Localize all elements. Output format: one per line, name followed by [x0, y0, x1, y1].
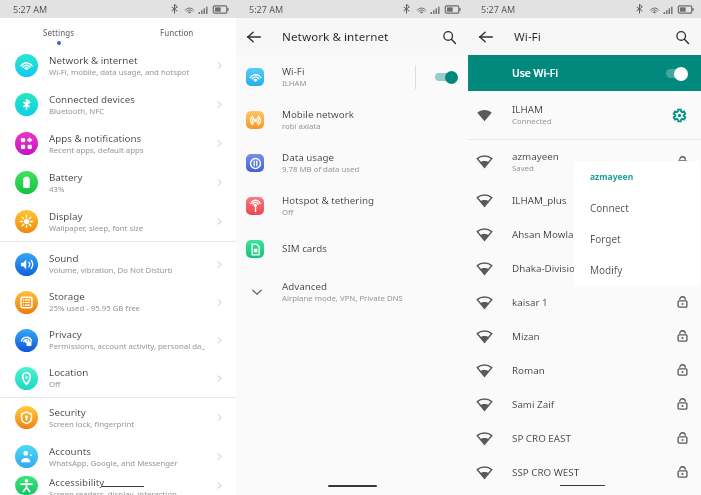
staticText: 5:27 AM — [249, 3, 284, 15]
staticText: Sound — [49, 252, 79, 265]
staticText: ILHAM — [282, 78, 307, 89]
staticText: Forget — [590, 232, 621, 246]
staticText: robi axiata — [282, 121, 321, 132]
staticText: 43% — [49, 184, 65, 195]
staticText: Privacy — [49, 328, 82, 341]
staticText: Data usage — [282, 151, 335, 164]
staticText: Wi-Fi — [514, 29, 541, 45]
staticText: Recent apps, default apps — [49, 145, 144, 156]
button[interactable]: SIM cards — [236, 227, 468, 270]
button[interactable]: Toggle Wi-Fi — [433, 69, 458, 85]
button[interactable]: Accounts — [0, 437, 236, 476]
button[interactable]: ILHAM_plus — [468, 183, 701, 217]
staticText: 5:27 AM — [13, 3, 48, 15]
staticText: 5:27 AM — [481, 3, 516, 15]
staticText: Function — [160, 27, 194, 38]
staticText: azmayeen — [590, 171, 634, 183]
staticText: Connected — [512, 116, 552, 127]
staticText: Ahsan Mowla — [512, 228, 574, 241]
button[interactable]: Ahsan Mowla — [468, 217, 701, 251]
button[interactable]: Function — [118, 18, 236, 46]
button[interactable]: Display — [0, 202, 236, 241]
button[interactable]: Back — [473, 24, 499, 50]
staticText: Off — [49, 379, 61, 390]
button[interactable]: Wi-Fi — [236, 55, 468, 98]
staticText: Hotspot & tethering — [282, 194, 375, 207]
staticText: Accessibility — [49, 476, 105, 489]
staticText: Bluetooth, NFC — [49, 106, 105, 117]
button[interactable]: Search — [669, 24, 695, 50]
button[interactable]: Data usage — [236, 141, 468, 184]
staticText: Display — [49, 210, 83, 223]
staticText: SIM cards — [282, 242, 327, 255]
button[interactable]: Security — [0, 398, 236, 437]
button[interactable]: Location — [0, 359, 236, 397]
button[interactable]: Roman — [468, 353, 701, 387]
button[interactable]: Mobile network — [236, 98, 468, 141]
button[interactable]: Advanced — [236, 270, 468, 313]
staticText: Use Wi-Fi — [512, 66, 559, 80]
button[interactable]: Modify — [574, 254, 700, 285]
staticText: Battery — [49, 171, 83, 184]
button[interactable]: azmayeen — [468, 140, 701, 183]
staticText: Security — [49, 406, 86, 419]
staticText: Screen readers, display, interaction — [49, 489, 177, 495]
staticText: Connect — [590, 201, 629, 215]
button[interactable]: Mizan — [468, 319, 701, 353]
button[interactable]: Privacy — [0, 321, 236, 359]
staticText: ILHAM — [512, 103, 543, 116]
staticText: Screen lock, fingerprint — [49, 419, 135, 430]
staticText: kaisar 1 — [512, 296, 548, 309]
staticText: Location — [49, 366, 89, 379]
staticText: 25% used - 95.95 GB free — [49, 303, 141, 314]
button[interactable]: Network & internet — [0, 46, 236, 85]
staticText: WhatsApp, Google, and Messenger — [49, 458, 178, 469]
staticText: Wi-Fi, mobile, data usage, and hotspot — [49, 67, 190, 78]
staticText: Saved — [512, 163, 534, 174]
button[interactable]: Forget — [574, 223, 700, 254]
button[interactable]: Apps & notifications — [0, 124, 236, 163]
staticText: Apps & notifications — [49, 132, 142, 145]
button[interactable]: SP CRO EAST — [468, 421, 701, 455]
button[interactable]: Storage — [0, 283, 236, 321]
button[interactable]: Back — [241, 24, 267, 50]
staticText: Wi-Fi — [282, 65, 305, 78]
button[interactable]: kaisar 1 — [468, 285, 701, 319]
staticText: Wallpaper, sleep, font size — [49, 223, 144, 234]
staticText: Mobile network — [282, 108, 354, 121]
button[interactable]: Accessibility — [0, 476, 236, 495]
button[interactable]: Battery — [0, 163, 236, 202]
staticText: Accounts — [49, 445, 91, 458]
button[interactable]: Network settings — [670, 106, 688, 124]
button[interactable]: Connect — [574, 192, 700, 223]
button[interactable]: Use Wi-Fi toggle — [664, 66, 688, 81]
button[interactable]: Use Wi-Fi — [468, 55, 701, 91]
button[interactable]: ILHAM — [468, 91, 701, 139]
staticText: 9.78 MB of data used — [282, 164, 360, 175]
button[interactable]: Connected devices — [0, 85, 236, 124]
button[interactable]: Hotspot & tethering — [236, 184, 468, 227]
staticText: Dhaka-Division — [512, 262, 581, 275]
staticText: Settings — [43, 27, 75, 38]
staticText: Network & internet — [49, 54, 138, 67]
button[interactable]: Settings — [0, 18, 118, 46]
staticText: SSP CRO WEST — [512, 466, 580, 479]
button[interactable]: Sound — [0, 245, 236, 283]
button[interactable]: Search — [436, 24, 462, 50]
staticText: Connected devices — [49, 93, 135, 106]
button[interactable]: Sami Zaif — [468, 387, 701, 421]
staticText: Off — [282, 207, 294, 218]
staticText: Roman — [512, 364, 545, 377]
staticText: Airplane mode, VPN, Private DNS — [282, 293, 403, 304]
staticText: Storage — [49, 290, 85, 303]
staticText: Permissions, account activity, personal … — [49, 341, 205, 352]
staticText: Modify — [590, 263, 623, 277]
staticText: Sami Zaif — [512, 398, 555, 411]
staticText: ILHAM_plus — [512, 194, 567, 207]
staticText: SP CRO EAST — [512, 432, 571, 445]
button[interactable]: SSP CRO WEST — [468, 455, 701, 489]
staticText: azmayeen — [512, 150, 559, 163]
staticText: Advanced — [282, 280, 328, 293]
staticText: Network & internet — [282, 29, 389, 45]
button[interactable]: Dhaka-Division — [468, 251, 701, 285]
